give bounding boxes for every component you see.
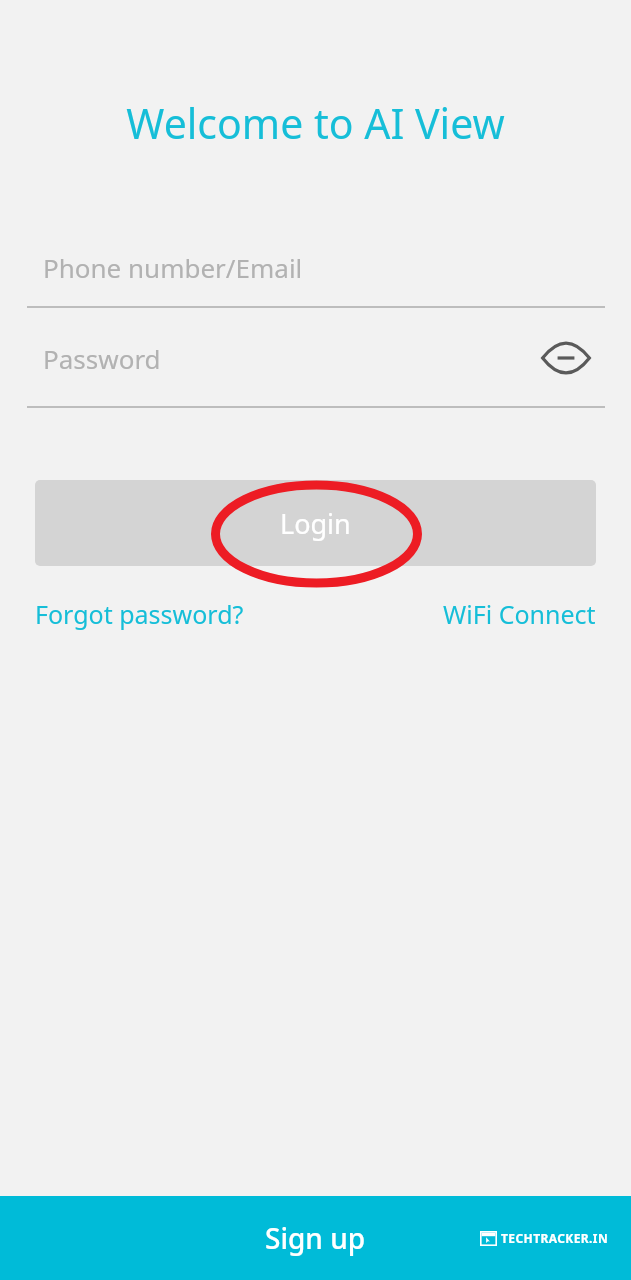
button[interactable]: Phone number/Email (0, 244, 631, 308)
button[interactable]: Show password (537, 329, 595, 387)
button[interactable]: Password (0, 328, 631, 408)
button[interactable]: Login (35, 480, 596, 566)
staticText: Forgot password? (35, 597, 244, 631)
staticText: Sign up (265, 1219, 366, 1257)
staticText: Phone number/Email (43, 250, 303, 285)
staticText: Login (280, 505, 351, 542)
button[interactable]: Sign up (0, 1196, 631, 1280)
staticText: Welcome to AI View (0, 95, 631, 151)
staticText: TECHTRACKER.IN (501, 1230, 609, 1246)
button[interactable]: Forgot password? (35, 591, 244, 637)
staticText: Password (43, 341, 161, 376)
button[interactable]: WiFi Connect (443, 591, 596, 637)
staticText: WiFi Connect (443, 597, 596, 631)
